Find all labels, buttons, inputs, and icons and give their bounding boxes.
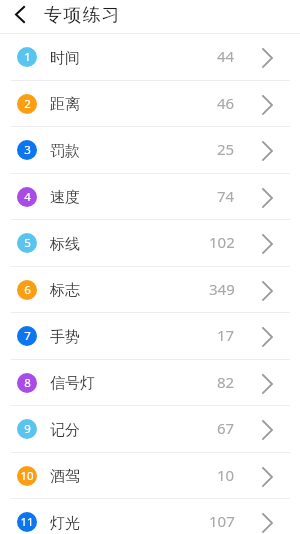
staticText: 11	[20, 514, 34, 530]
staticText: 10	[20, 468, 34, 484]
button[interactable]: 8	[0, 360, 300, 406]
staticText: 10	[217, 465, 235, 485]
button[interactable]: 5	[0, 220, 300, 267]
button[interactable]: 9	[0, 406, 300, 453]
button[interactable]: 6	[0, 267, 300, 313]
staticText: 距离	[50, 95, 80, 114]
staticText: 9	[24, 421, 31, 437]
staticText: 标志	[50, 281, 80, 300]
button[interactable]: 7	[0, 313, 300, 360]
staticText: 3	[24, 142, 31, 158]
staticText: 罚款	[50, 142, 80, 161]
staticText: 速度	[50, 188, 80, 207]
staticText: 专项练习	[44, 4, 121, 27]
button[interactable]: 4	[0, 174, 300, 220]
staticText: 7	[24, 328, 31, 344]
staticText: 74	[217, 186, 235, 206]
staticText: 44	[217, 46, 235, 66]
staticText: 6	[24, 282, 31, 298]
staticText: 46	[217, 93, 235, 113]
staticText: 17	[217, 325, 235, 345]
staticText: 107	[209, 511, 235, 531]
button[interactable]: 1	[0, 34, 300, 81]
button[interactable]: 10	[0, 453, 300, 499]
staticText: 标线	[50, 235, 80, 254]
staticText: 信号灯	[50, 374, 95, 393]
staticText: 8	[24, 375, 31, 391]
staticText: 67	[217, 418, 235, 438]
button[interactable]: 2	[0, 81, 300, 127]
staticText: 记分	[50, 421, 80, 440]
button[interactable]: 3	[0, 127, 300, 174]
staticText: 5	[24, 235, 31, 251]
button[interactable]: 11	[0, 499, 300, 534]
staticText: 灯光	[50, 514, 80, 533]
staticText: 102	[209, 232, 235, 252]
button[interactable]: Back	[8, 0, 32, 28]
staticText: 时间	[50, 49, 80, 68]
staticText: 酒驾	[50, 467, 80, 486]
staticText: 手势	[50, 328, 80, 347]
staticText: 349	[209, 279, 235, 299]
staticText: 25	[217, 139, 235, 159]
staticText: 2	[24, 96, 31, 112]
staticText: 4	[24, 189, 31, 205]
staticText: 82	[217, 372, 235, 392]
staticText: 1	[24, 49, 31, 65]
